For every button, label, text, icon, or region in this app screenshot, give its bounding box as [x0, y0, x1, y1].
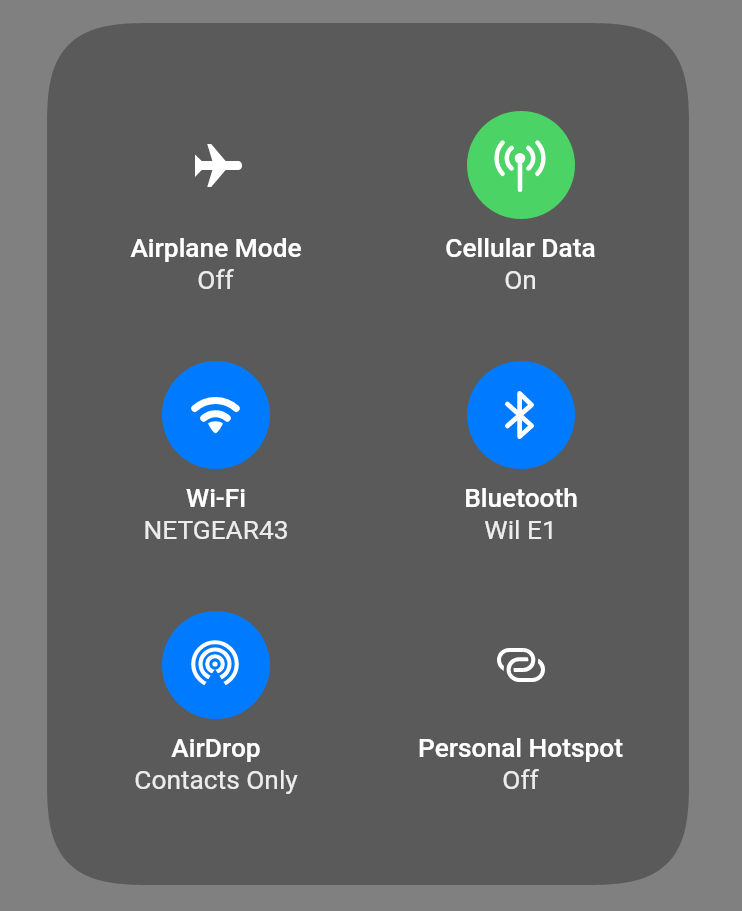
- other: Airplane Mode: [195, 144, 242, 187]
- other: Cellular Data: [494, 140, 546, 192]
- staticText: Wil E1: [484, 515, 557, 546]
- button[interactable]: Airplane Mode: [107, 111, 324, 296]
- staticText: Cellular Data: [445, 233, 596, 264]
- staticText: Off: [502, 765, 539, 796]
- staticText: Off: [197, 265, 234, 296]
- other: AirDrop: [191, 640, 239, 688]
- staticText: Personal Hotspot: [418, 733, 623, 764]
- button[interactable]: Cellular Data: [412, 111, 629, 296]
- staticText: NETGEAR43: [143, 515, 289, 546]
- other: Bluetooth: [505, 391, 534, 439]
- button[interactable]: Wi-Fi: [107, 361, 324, 546]
- staticText: On: [504, 265, 537, 296]
- staticText: AirDrop: [171, 733, 261, 764]
- staticText: Contacts Only: [134, 765, 298, 796]
- staticText: Airplane Mode: [130, 233, 302, 264]
- button[interactable]: Bluetooth: [412, 361, 629, 546]
- staticText: Wi-Fi: [186, 483, 246, 514]
- button[interactable]: AirDrop: [107, 611, 324, 796]
- other: Personal Hotspot: [497, 648, 545, 682]
- other: Wi-Fi: [191, 397, 240, 433]
- staticText: Bluetooth: [464, 483, 578, 514]
- button[interactable]: Personal Hotspot: [412, 611, 629, 796]
